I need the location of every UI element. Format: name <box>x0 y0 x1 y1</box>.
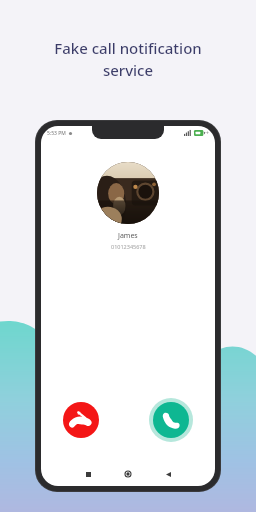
staticText: + <box>206 130 209 137</box>
staticText: Fake call notification service <box>18 38 238 81</box>
staticText: 5:53 PM <box>47 130 66 137</box>
button[interactable]: Recent apps <box>75 466 101 482</box>
staticText: 01012345678 <box>111 243 146 250</box>
staticText: James <box>118 231 138 241</box>
button[interactable]: Decline call <box>63 402 99 438</box>
button[interactable]: Accept call <box>149 398 193 442</box>
button[interactable]: Home <box>115 466 141 482</box>
button[interactable]: Back <box>155 466 181 482</box>
